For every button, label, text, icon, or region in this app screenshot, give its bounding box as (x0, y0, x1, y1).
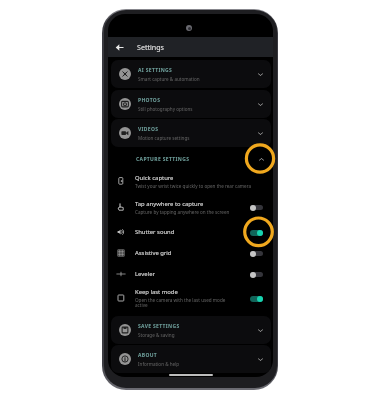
button[interactable]: CAPTURE SETTINGS (108, 149, 273, 169)
button[interactable]: Assistive grid (108, 243, 273, 263)
other: Expand (256, 355, 265, 364)
staticText: AI SETTINGS (138, 67, 173, 74)
staticText: CAPTURE SETTINGS (136, 156, 190, 163)
other: Expand (256, 129, 265, 138)
other: Collapse (257, 155, 266, 164)
button[interactable]: Back (112, 40, 126, 54)
staticText: ABOUT (138, 352, 158, 359)
staticText: Information & help (138, 361, 180, 367)
button[interactable]: Toggle on (250, 295, 263, 302)
staticText: Motion capture settings (138, 135, 190, 141)
staticText: Settings (137, 42, 164, 52)
button[interactable]: Keep last mode (108, 284, 273, 312)
staticText: Storage & saving (138, 332, 175, 338)
button[interactable]: Shutter sound (108, 222, 273, 242)
staticText: Smart capture & automation (138, 76, 200, 82)
staticText: Shutter sound (135, 228, 175, 236)
staticText: Capture by tapping anywhere on the scree… (135, 209, 230, 215)
button[interactable]: VIDEOS (111, 119, 271, 147)
other: Expand (256, 100, 265, 109)
staticText: Open the camera with the last used mode … (135, 297, 228, 309)
button[interactable]: Toggle off (250, 204, 263, 211)
staticText: Tap anywhere to capture (135, 200, 204, 208)
button[interactable]: PHOTOS (111, 90, 271, 118)
button[interactable]: Toggle on (250, 229, 263, 236)
button[interactable]: Leveler (108, 264, 273, 284)
staticText: Assistive grid (135, 249, 172, 257)
staticText: SAVE SETTINGS (138, 323, 180, 330)
staticText: VIDEOS (138, 126, 159, 133)
staticText: Keep last mode (135, 288, 178, 296)
button[interactable]: AI SETTINGS (111, 60, 271, 88)
other: Expand (256, 70, 265, 79)
staticText: Leveler (135, 270, 155, 278)
staticText: Twist your wrist twice quickly to open t… (135, 183, 252, 189)
button[interactable]: Toggle off (250, 271, 263, 278)
other: Expand (256, 326, 265, 335)
staticText: PHOTOS (138, 97, 161, 104)
button[interactable]: ABOUT (111, 345, 271, 373)
button[interactable]: SAVE SETTINGS (111, 316, 271, 344)
staticText: Quick capture (135, 174, 174, 182)
staticText: Still photography options (138, 106, 193, 112)
button[interactable]: Quick capture (108, 169, 273, 193)
button[interactable]: Toggle off (250, 250, 263, 257)
button[interactable]: Tap anywhere to capture (108, 195, 273, 219)
